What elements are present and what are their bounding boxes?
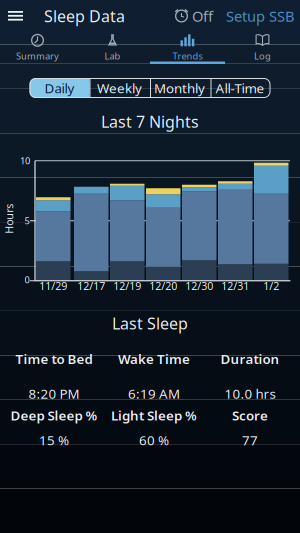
staticText: 1/2: [263, 279, 279, 293]
staticText: Weekly: [97, 79, 142, 97]
staticText: Sleep Data: [44, 5, 125, 27]
button[interactable]: All-Time: [209, 78, 270, 98]
staticText: 12/30: [185, 279, 213, 293]
staticText: 12/31: [221, 279, 249, 293]
staticText: Setup SSB: [226, 6, 295, 26]
staticText: 11/29: [39, 279, 67, 293]
button[interactable]: Setup SSB: [213, 6, 300, 26]
staticText: Off: [192, 6, 213, 26]
staticText: Last 7 Nights: [101, 111, 199, 132]
button[interactable]: Summary: [0, 33, 75, 63]
staticText: Deep Sleep %: [10, 406, 97, 424]
staticText: Last Sleep: [112, 313, 188, 334]
staticText: Daily: [44, 79, 74, 97]
staticText: 15 %: [39, 431, 69, 449]
button[interactable]: Trends: [150, 33, 225, 63]
staticText: 10: [20, 155, 30, 167]
staticText: 6:19 AM: [128, 385, 180, 402]
staticText: Summary: [16, 50, 59, 62]
staticText: 10.0 hrs: [224, 385, 275, 402]
staticText: Trends: [172, 50, 202, 62]
button[interactable]: Monthly: [149, 78, 209, 98]
staticText: 0: [24, 274, 29, 286]
staticText: 12/17: [77, 279, 105, 293]
staticText: Wake Time: [118, 350, 190, 368]
button[interactable]: Weekly: [89, 78, 149, 98]
button[interactable]: Daily: [29, 78, 89, 98]
staticText: Monthly: [154, 79, 205, 97]
staticText: Hours: [0, 212, 24, 226]
staticText: 5: [24, 215, 29, 227]
staticText: Lab: [104, 50, 120, 62]
staticText: Light Sleep %: [111, 406, 197, 424]
staticText: Log: [254, 50, 271, 62]
staticText: 77: [242, 431, 258, 449]
button[interactable]: Lab: [75, 33, 150, 63]
staticText: 12/19: [113, 279, 141, 293]
staticText: Score: [232, 406, 268, 424]
staticText: 60 %: [139, 431, 169, 449]
staticText: All-Time: [215, 79, 264, 97]
button[interactable]: Log: [225, 33, 300, 63]
staticText: 12/20: [149, 279, 177, 293]
staticText: Time to Bed: [15, 350, 92, 368]
staticText: 8:20 PM: [28, 385, 79, 402]
staticText: Duration: [220, 350, 279, 368]
button[interactable]: Menu: [0, 11, 23, 21]
button[interactable]: Alarm Off: [174, 6, 213, 26]
